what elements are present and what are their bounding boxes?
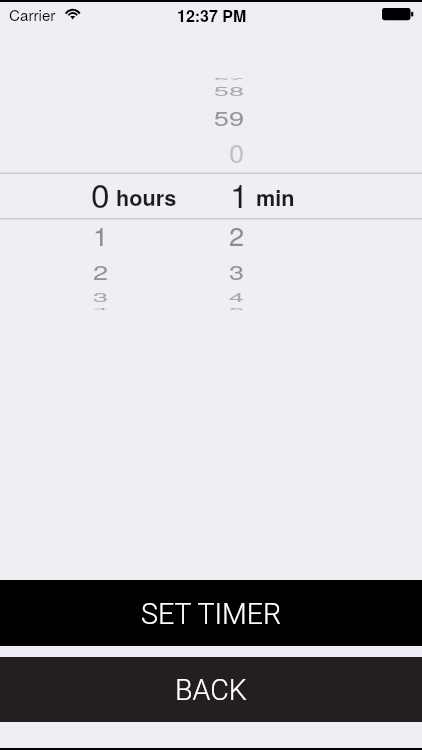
staticText: 0	[228, 134, 244, 171]
staticText: 57	[213, 77, 244, 81]
other: Battery	[382, 8, 413, 21]
staticText: 3	[228, 257, 244, 286]
staticText: 2	[92, 257, 108, 286]
staticText: 1	[92, 217, 108, 254]
staticText: 5	[228, 307, 244, 311]
staticText: 58	[213, 82, 244, 100]
staticText: BACK	[175, 673, 247, 707]
staticText: 0	[91, 170, 110, 218]
staticText: 59	[213, 103, 244, 132]
staticText: SET TIMER	[141, 597, 282, 631]
button[interactable]: Minutes wheel	[211, 64, 422, 326]
staticText: 1	[230, 170, 249, 218]
other: Wi-Fi	[63, 7, 81, 21]
staticText: 4	[228, 288, 244, 306]
staticText: 4	[92, 307, 108, 311]
staticText: hours	[116, 182, 177, 213]
staticText: min	[256, 182, 295, 213]
staticText: 3	[92, 288, 108, 306]
button[interactable]: SET TIMER	[0, 580, 422, 646]
button[interactable]: Hours wheel	[0, 64, 211, 326]
staticText: Carrier	[9, 4, 56, 26]
button[interactable]: BACK	[0, 657, 422, 722]
staticText: 12:37 PM	[177, 4, 247, 27]
staticText: 2	[228, 217, 244, 254]
